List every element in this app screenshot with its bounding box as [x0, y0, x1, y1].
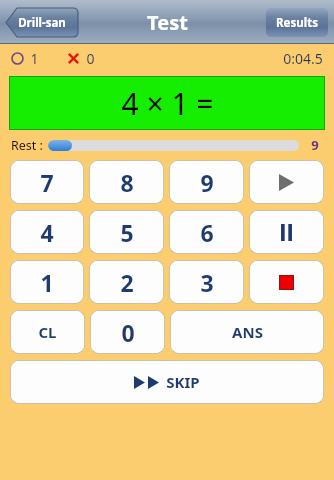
button[interactable]: 8 — [89, 160, 164, 204]
staticText: 2 — [120, 267, 134, 298]
staticText: Rest : — [11, 137, 43, 154]
button[interactable]: 4 — [10, 210, 84, 254]
button[interactable]: 3 — [169, 260, 244, 304]
button[interactable]: 6 — [169, 210, 244, 254]
staticText: 4 × 1 = — [121, 83, 214, 124]
staticText: 0 — [121, 317, 135, 348]
staticText: 1 — [30, 49, 39, 68]
button[interactable]: 0 — [90, 310, 165, 354]
staticText: ANS — [232, 322, 263, 342]
button[interactable]: 7 — [10, 160, 84, 204]
button[interactable]: CL — [10, 310, 85, 354]
staticText: 7 — [40, 167, 54, 198]
staticText: 3 — [200, 267, 214, 298]
staticText: 0:04.5 — [283, 49, 323, 68]
staticText: 1 — [40, 267, 54, 298]
button[interactable]: Stop — [249, 260, 324, 304]
button[interactable]: Pause — [249, 210, 324, 254]
button[interactable]: 9 — [169, 160, 244, 204]
staticText: 9 — [200, 167, 214, 198]
staticText: 0 — [86, 49, 95, 68]
button[interactable]: 5 — [89, 210, 164, 254]
button[interactable]: 1 — [10, 260, 84, 304]
staticText: Results — [276, 15, 318, 31]
staticText: 8 — [120, 167, 134, 198]
staticText: CL — [38, 322, 57, 342]
staticText: 4 — [40, 217, 54, 248]
button[interactable]: Drill-san — [6, 8, 78, 37]
staticText: Drill-san — [18, 15, 66, 31]
button[interactable]: SKIP — [10, 360, 324, 404]
staticText: 5 — [120, 217, 134, 248]
button[interactable]: Play — [249, 160, 324, 204]
staticText: SKIP — [166, 372, 200, 392]
staticText: 6 — [200, 217, 214, 248]
button[interactable]: ANS — [170, 310, 324, 354]
staticText: Test — [147, 9, 188, 36]
staticText: 9 — [311, 136, 319, 154]
button[interactable]: 2 — [89, 260, 164, 304]
button[interactable]: Results — [266, 8, 328, 37]
